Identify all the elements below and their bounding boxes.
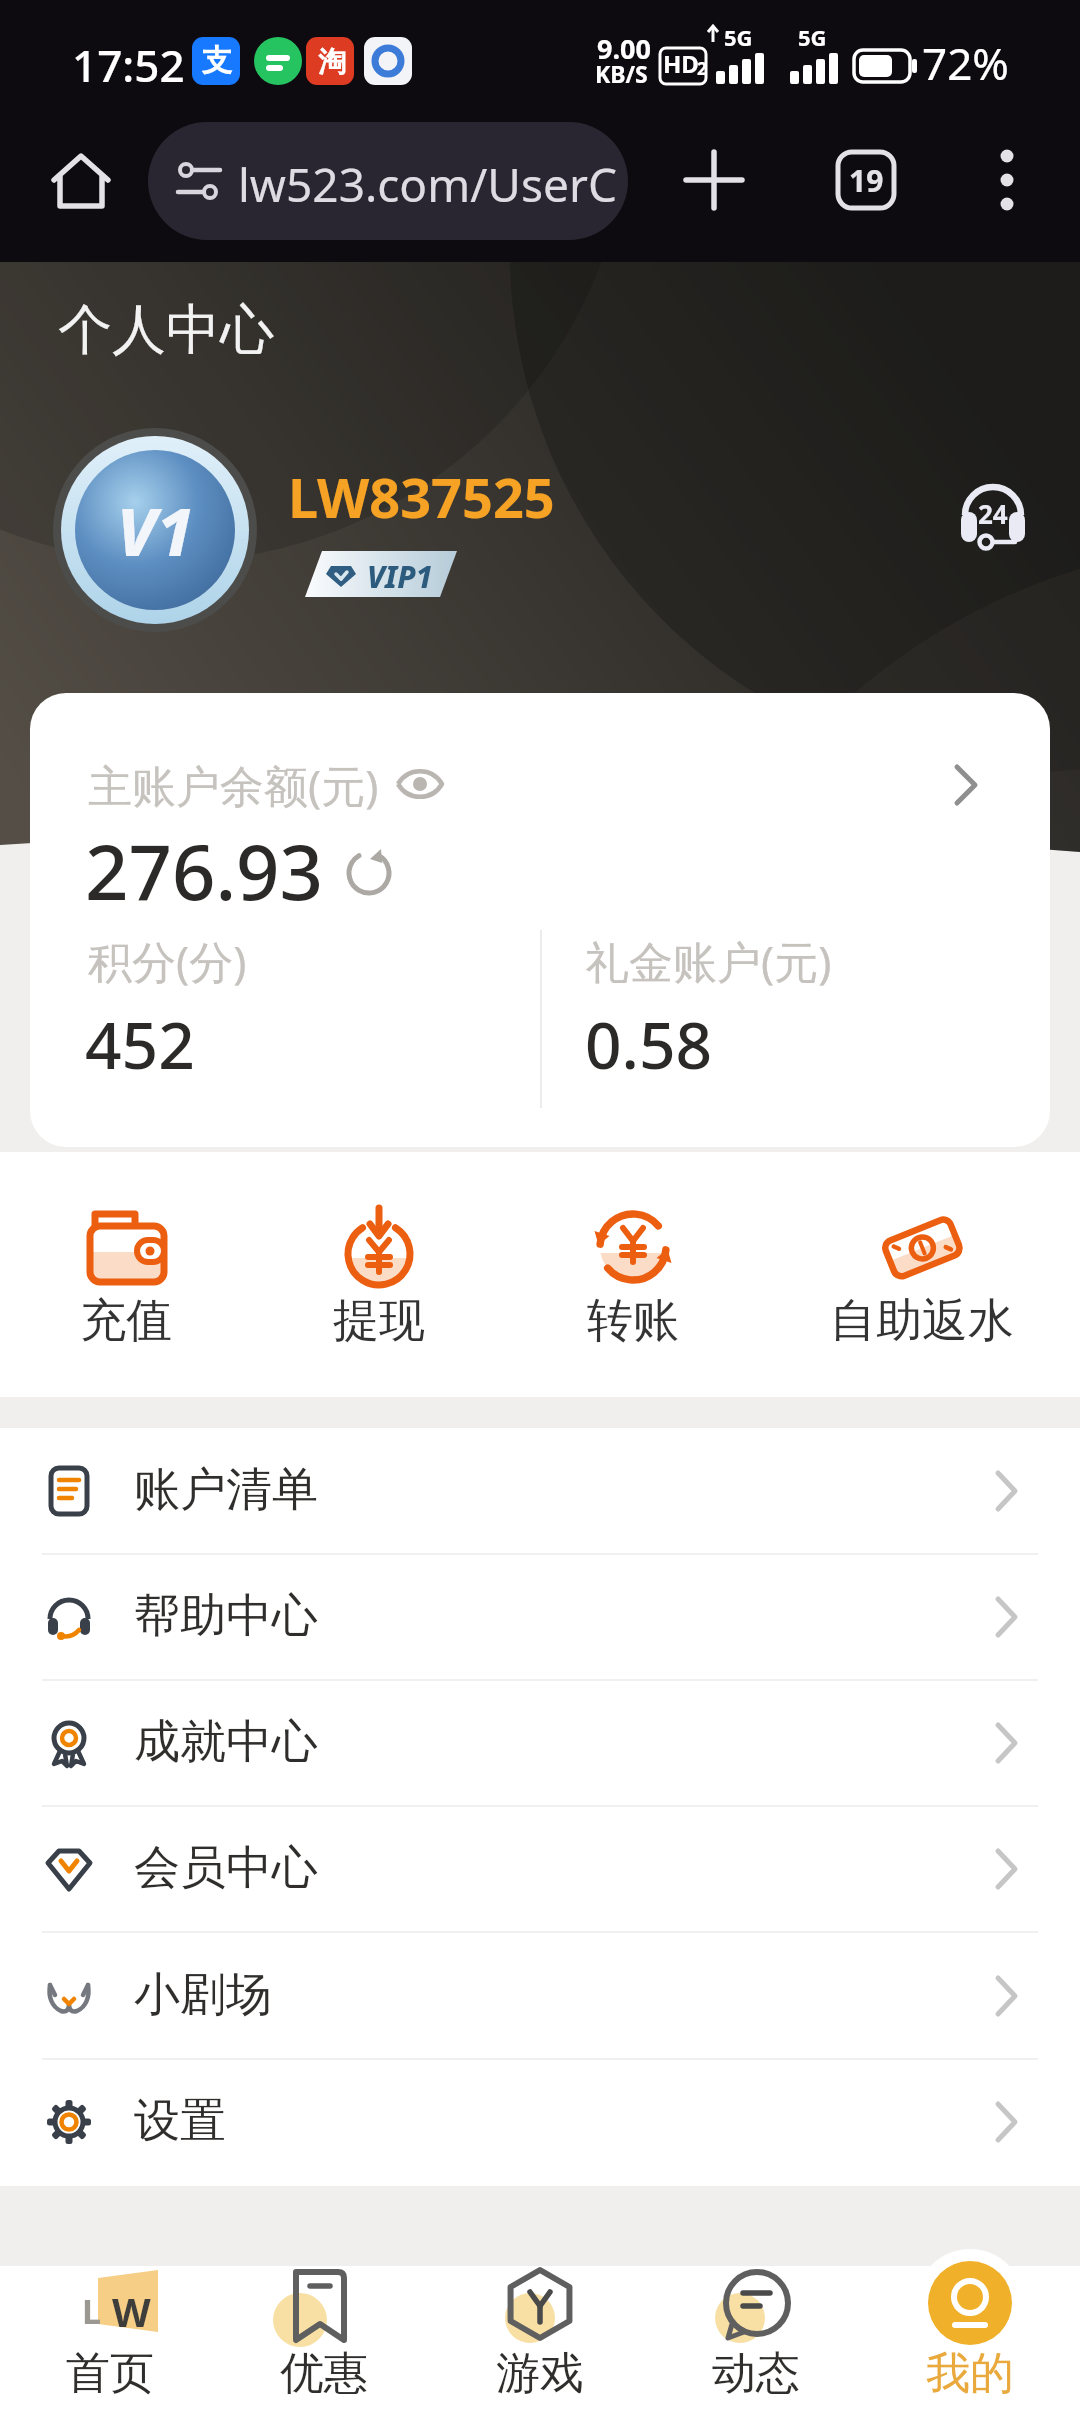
staticText: 我的 — [926, 2346, 1014, 2401]
staticText: W — [112, 2284, 151, 2338]
button[interactable] — [988, 150, 1026, 210]
staticText: 支 — [202, 42, 232, 80]
staticText: V1 — [117, 485, 194, 575]
staticText: 0.58 — [585, 1001, 713, 1088]
staticText: 小剧场 — [134, 1966, 272, 2024]
staticText: lw523.com/UserC — [238, 153, 617, 216]
button[interactable]: 24 — [958, 480, 1028, 550]
staticText: 17:52 — [72, 35, 185, 95]
button[interactable]: 帮助中心 — [0, 1554, 1080, 1680]
button[interactable] — [234, 2266, 414, 2412]
staticText: 帮助中心 — [134, 1587, 318, 1645]
button[interactable]: 会员中心 — [0, 1806, 1080, 1932]
button[interactable] — [345, 849, 393, 897]
staticText: 5G — [724, 22, 753, 52]
staticText: 积分(分) — [88, 931, 247, 991]
staticText: 游戏 — [496, 2346, 584, 2401]
button[interactable]: 设置 — [0, 2059, 1080, 2185]
staticText: 72% — [922, 33, 1009, 93]
button[interactable]: 19 — [836, 150, 896, 210]
button[interactable] — [396, 765, 444, 803]
button[interactable] — [812, 1204, 1032, 1374]
button[interactable]: 账户清单 — [0, 1428, 1080, 1554]
staticText: 礼金账户(元) — [585, 931, 832, 991]
button[interactable] — [66, 1204, 186, 1374]
staticText: 会员中心 — [134, 1839, 318, 1897]
button[interactable] — [319, 1204, 439, 1374]
button[interactable]: 小剧场 — [0, 1933, 1080, 2059]
staticText: 转账 — [587, 1292, 679, 1350]
staticText: 账户清单 — [134, 1461, 318, 1519]
staticText: 5G — [798, 22, 827, 52]
staticText: 设置 — [134, 2092, 226, 2150]
staticText: HD — [663, 47, 699, 80]
staticText: 276.93 — [85, 819, 324, 923]
staticText: KB/S — [595, 58, 648, 89]
staticText: 提现 — [333, 1292, 425, 1350]
staticText: 淘 — [318, 44, 346, 79]
staticText: 452 — [85, 1001, 195, 1088]
staticText: 主账户余额(元) — [88, 755, 379, 815]
staticText: 24 — [978, 496, 1008, 531]
button[interactable] — [686, 152, 742, 208]
button[interactable] — [666, 2266, 846, 2412]
staticText: 优惠 — [280, 2346, 368, 2401]
button[interactable]: 成就中心 — [0, 1680, 1080, 1806]
staticText: L — [82, 2288, 102, 2334]
staticText: 动态 — [712, 2346, 800, 2401]
button[interactable] — [573, 1204, 693, 1374]
button[interactable] — [880, 2250, 1060, 2412]
staticText: 自助返水 — [830, 1292, 1014, 1350]
staticText: 充值 — [80, 1292, 172, 1350]
staticText: 个人中心 — [58, 296, 274, 364]
staticText: 2 — [697, 57, 707, 80]
button[interactable]: lw523.com/UserC — [148, 122, 628, 240]
staticText: 成就中心 — [134, 1713, 318, 1771]
staticText: LW837525 — [288, 460, 555, 534]
button[interactable]: L — [20, 2266, 200, 2412]
staticText: 19 — [849, 160, 884, 201]
staticText: VIP1 — [367, 556, 433, 597]
button[interactable] — [450, 2266, 630, 2412]
staticText: 首页 — [66, 2346, 154, 2401]
staticText: 9.00 — [597, 30, 651, 67]
